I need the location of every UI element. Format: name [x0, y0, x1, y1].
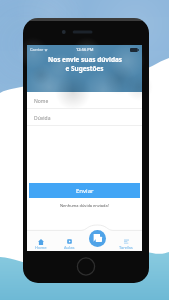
staticText: Nos envie suas dúvidas: [48, 55, 122, 64]
staticText: Aulas: [64, 245, 75, 251]
staticText: Dúvida: [34, 115, 51, 122]
staticText: 12:56 PM: [76, 47, 94, 52]
button[interactable]: Enviar: [29, 183, 140, 198]
staticText: Carrier: [30, 47, 44, 52]
button[interactable]: Home: [27, 231, 55, 250]
button[interactable]: Dúvida: [27, 112, 142, 125]
staticText: e Sugestões: [65, 64, 104, 73]
button[interactable]: Mensagens: [89, 230, 106, 247]
button[interactable]: Aulas: [55, 231, 83, 250]
button[interactable]: Nome: [27, 95, 142, 108]
staticText: Home: [35, 245, 47, 251]
button[interactable]: Tarefas: [112, 231, 140, 250]
staticText: Tarefas: [119, 245, 133, 251]
staticText: Nome: [34, 98, 49, 105]
staticText: Enviar: [76, 187, 94, 195]
staticText: Nenhuma dúvida enviada!: [60, 203, 109, 208]
